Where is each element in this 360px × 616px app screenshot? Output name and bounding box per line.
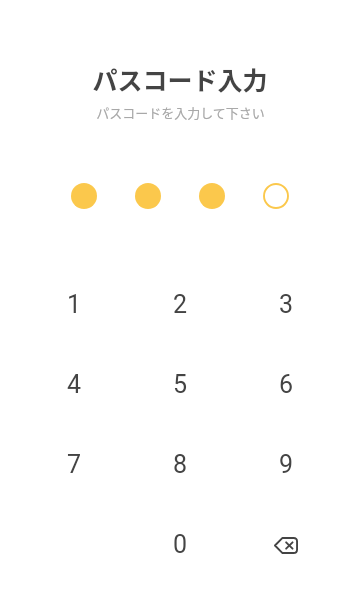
button[interactable]: 3 — [249, 267, 323, 341]
button[interactable]: 4 — [37, 347, 111, 421]
staticText: 0 — [173, 530, 188, 559]
staticText: 5 — [173, 370, 188, 399]
button[interactable]: 8 — [143, 427, 217, 501]
staticText: パスコード入力 — [92, 61, 268, 97]
staticText: 4 — [67, 370, 82, 399]
button[interactable]: 2 — [143, 267, 217, 341]
button[interactable]: 7 — [37, 427, 111, 501]
staticText: 7 — [67, 450, 82, 479]
staticText: パスコードを入力して下さい — [96, 103, 265, 122]
staticText: 2 — [173, 290, 188, 319]
button[interactable]: 5 — [143, 347, 217, 421]
button[interactable]: 1 — [37, 267, 111, 341]
button[interactable]: Backspace — [249, 507, 323, 581]
button[interactable]: 9 — [249, 427, 323, 501]
staticText: 8 — [173, 450, 188, 479]
button[interactable]: 6 — [249, 347, 323, 421]
staticText: 1 — [67, 290, 82, 319]
staticText: 3 — [279, 290, 294, 319]
button[interactable]: 0 — [143, 507, 217, 581]
staticText: 9 — [279, 450, 294, 479]
staticText: 6 — [279, 370, 294, 399]
